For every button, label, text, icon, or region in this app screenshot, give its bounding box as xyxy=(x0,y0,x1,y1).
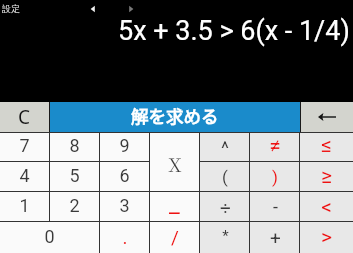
staticText: - xyxy=(273,196,278,217)
button[interactable]: ^ xyxy=(200,132,250,161)
staticText: 解を求める xyxy=(131,103,219,128)
staticText: 8 xyxy=(69,135,80,156)
button[interactable]: ) xyxy=(250,162,300,191)
button[interactable]: 2 xyxy=(50,192,99,221)
button[interactable]: 4 xyxy=(0,162,49,191)
staticText: – xyxy=(167,201,182,227)
button[interactable]: C xyxy=(0,102,49,132)
staticText: ≤ xyxy=(321,133,332,158)
button[interactable]: / xyxy=(150,222,199,253)
button[interactable]: ÷ xyxy=(200,192,250,221)
button[interactable]: ≤ xyxy=(300,132,353,161)
button[interactable]: > xyxy=(300,222,353,253)
staticText: 2 xyxy=(69,195,80,216)
button[interactable]: 1 xyxy=(0,192,49,221)
button[interactable]: X xyxy=(150,132,199,191)
button[interactable]: Next equation xyxy=(126,4,136,14)
staticText: ≠ xyxy=(269,134,281,159)
staticText: 0 xyxy=(44,226,55,247)
button[interactable]: . xyxy=(100,222,149,253)
staticText: * xyxy=(222,227,229,245)
staticText: 5x + 3.5 > 6(x - 1/4) xyxy=(118,15,350,47)
staticText: + xyxy=(270,227,281,249)
staticText: 5 xyxy=(69,165,80,186)
button[interactable]: – xyxy=(150,192,199,221)
staticText: ) xyxy=(272,167,278,187)
button[interactable]: - xyxy=(250,192,300,221)
staticText: ÷ xyxy=(220,197,231,219)
staticText: X xyxy=(168,150,182,177)
button[interactable]: 設定 xyxy=(2,3,20,14)
staticText: C xyxy=(18,104,31,130)
button[interactable]: 7 xyxy=(0,132,49,161)
button[interactable]: < xyxy=(300,192,353,221)
staticText: ^ xyxy=(221,137,229,159)
staticText: . xyxy=(122,226,128,248)
button[interactable]: ≠ xyxy=(250,132,300,161)
button[interactable]: ≥ xyxy=(300,162,353,191)
button[interactable]: Backspace xyxy=(301,102,353,132)
button[interactable]: 0 xyxy=(0,222,99,253)
staticText: 6 xyxy=(119,165,130,186)
staticText: ( xyxy=(222,167,228,187)
button[interactable]: * xyxy=(200,222,250,253)
staticText: / xyxy=(171,226,179,248)
button[interactable]: 8 xyxy=(50,132,99,161)
button[interactable]: 6 xyxy=(100,162,149,191)
staticText: 設定 xyxy=(2,3,20,14)
button[interactable]: 9 xyxy=(100,132,149,161)
staticText: 1 xyxy=(19,195,30,216)
staticText: 9 xyxy=(119,135,130,156)
staticText: < xyxy=(321,195,332,220)
button[interactable]: 解を求める xyxy=(50,102,300,132)
staticText: 4 xyxy=(19,165,30,186)
staticText: 7 xyxy=(19,135,30,156)
button[interactable]: 5 xyxy=(50,162,99,191)
staticText: 3 xyxy=(119,195,130,216)
button[interactable]: 3 xyxy=(100,192,149,221)
staticText: ≥ xyxy=(321,164,332,189)
button[interactable]: + xyxy=(250,222,300,253)
button[interactable]: Previous equation xyxy=(88,4,98,14)
staticText: > xyxy=(321,225,332,250)
button[interactable]: ( xyxy=(200,162,250,191)
